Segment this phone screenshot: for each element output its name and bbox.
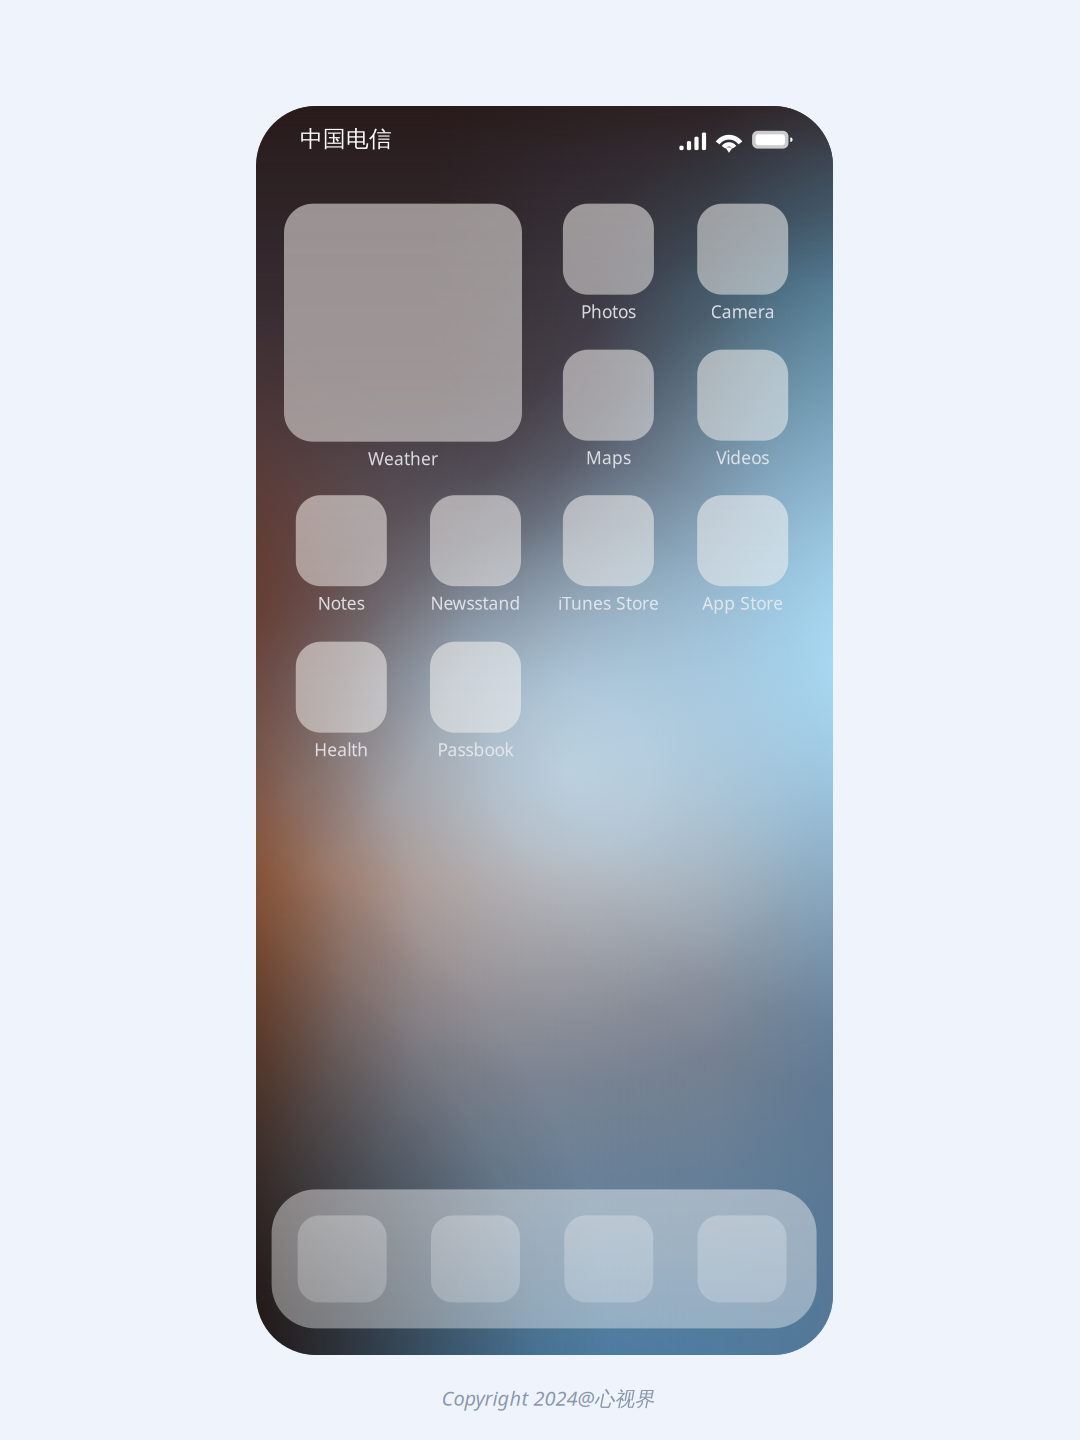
staticText: App Store <box>702 591 783 615</box>
button[interactable]: Notes <box>296 495 387 615</box>
staticText: 中国电信 <box>300 125 392 153</box>
button[interactable]: Health <box>296 642 387 761</box>
staticText: Passbook <box>437 738 513 761</box>
staticText: Notes <box>318 591 365 615</box>
button[interactable]: Phone <box>298 1215 387 1302</box>
staticText: Camera <box>711 300 775 323</box>
button[interactable]: Camera <box>697 204 788 323</box>
staticText: iTunes Store <box>558 591 659 615</box>
button[interactable]: Safari <box>564 1215 653 1302</box>
button[interactable]: iTunes Store <box>558 495 659 615</box>
button[interactable]: Passbook <box>430 642 521 761</box>
staticText: Newsstand <box>430 591 520 615</box>
staticText: Photos <box>581 300 636 323</box>
button[interactable]: Videos <box>697 350 788 469</box>
button[interactable]: Music <box>698 1215 787 1302</box>
staticText: Copyright 2024@心视界 <box>441 1384 654 1412</box>
staticText: Videos <box>716 446 769 469</box>
staticText: Health <box>314 738 368 761</box>
staticText: Maps <box>586 446 631 469</box>
staticText: Weather <box>368 447 438 470</box>
button[interactable]: App Store <box>697 495 788 615</box>
button[interactable]: Weather <box>284 204 522 470</box>
button[interactable]: Photos <box>563 204 654 323</box>
button[interactable]: Maps <box>563 350 654 469</box>
button[interactable]: Newsstand <box>430 495 521 615</box>
button[interactable]: Mail <box>431 1215 520 1302</box>
